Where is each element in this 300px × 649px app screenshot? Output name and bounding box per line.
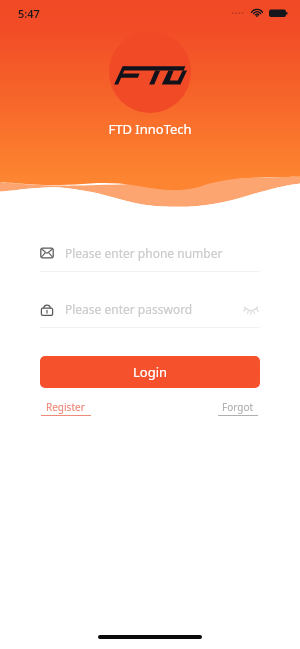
staticText: Register bbox=[46, 400, 85, 414]
button[interactable]: Show password bbox=[242, 302, 260, 316]
staticText: Forgot bbox=[222, 400, 254, 414]
staticText: Please enter phone number bbox=[65, 245, 223, 261]
button[interactable]: Forgot bbox=[216, 400, 260, 416]
staticText: Login bbox=[133, 363, 168, 381]
button[interactable]: Login bbox=[40, 356, 260, 388]
button[interactable]: Register bbox=[40, 400, 91, 416]
staticText: FTD InnoTech bbox=[0, 120, 300, 138]
staticText: 5:47 bbox=[18, 6, 40, 21]
staticText: Please enter password bbox=[65, 301, 193, 317]
